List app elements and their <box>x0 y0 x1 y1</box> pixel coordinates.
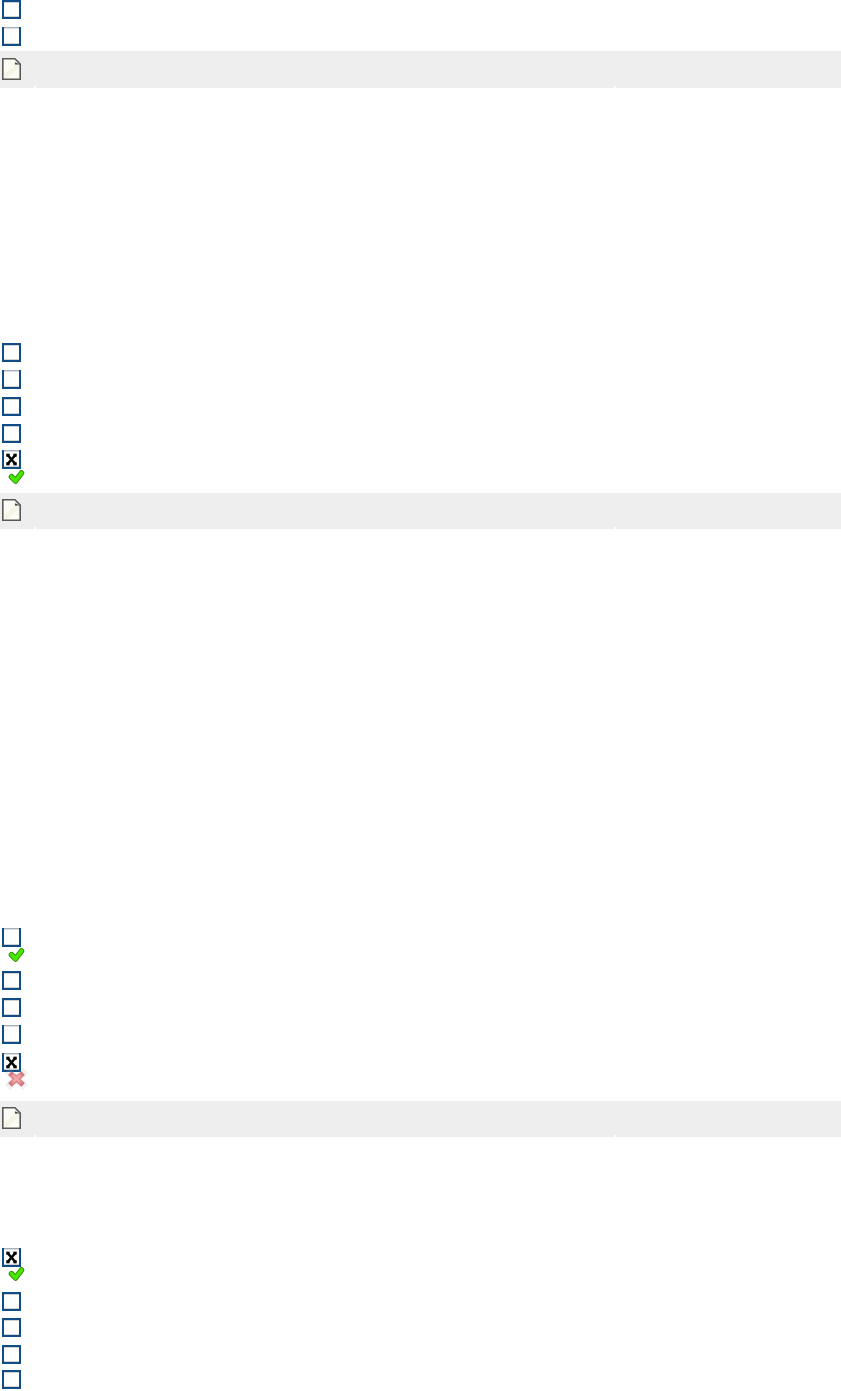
button[interactable] <box>0 51 841 88</box>
button[interactable]: Document <box>2 499 21 521</box>
button[interactable]: Cross <box>8 1071 25 1087</box>
button[interactable]: Image placeholder <box>2 0 21 19</box>
button[interactable]: Image placeholder <box>2 928 21 947</box>
button[interactable]: Image placeholder <box>2 27 21 46</box>
button[interactable]: Image placeholder <box>2 397 21 416</box>
button[interactable]: Broken image <box>2 450 21 469</box>
button[interactable]: Check <box>8 470 24 484</box>
button[interactable]: Image placeholder <box>2 1318 21 1337</box>
button[interactable]: Image placeholder <box>2 1025 21 1044</box>
button[interactable]: Image placeholder <box>2 1292 21 1311</box>
button[interactable]: Document <box>2 1107 21 1129</box>
button[interactable] <box>0 1101 841 1137</box>
button[interactable]: Image placeholder <box>2 370 21 389</box>
button[interactable]: Image placeholder <box>2 424 21 443</box>
button[interactable]: Image placeholder <box>2 343 21 362</box>
button[interactable]: Document <box>2 58 21 80</box>
button[interactable]: Broken image <box>2 1248 21 1267</box>
button[interactable]: Check <box>8 1267 24 1281</box>
button[interactable]: Check <box>8 948 24 962</box>
button[interactable]: Image placeholder <box>2 998 21 1017</box>
button[interactable]: Image placeholder <box>2 1370 21 1389</box>
button[interactable]: Image placeholder <box>2 1345 21 1364</box>
button[interactable]: Image placeholder <box>2 971 21 990</box>
button[interactable]: Broken image <box>2 1053 21 1072</box>
button[interactable] <box>0 493 841 529</box>
